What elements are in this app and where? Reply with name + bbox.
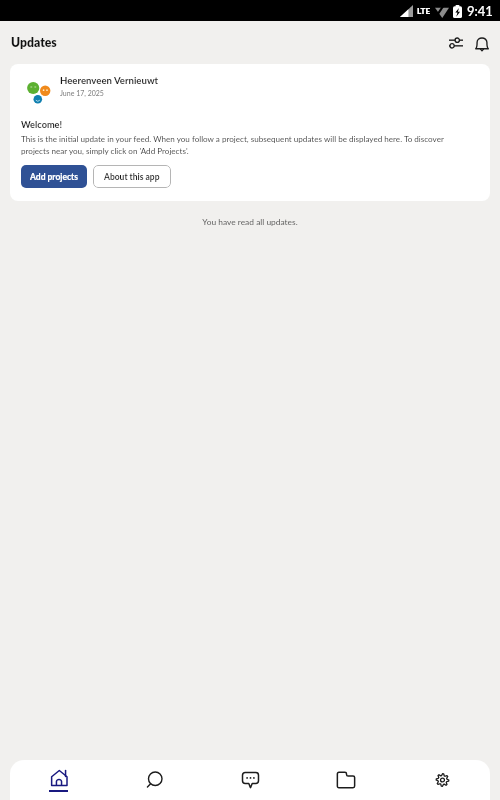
staticText: You have read all updates. — [0, 217, 500, 227]
button[interactable]: Home — [10, 760, 106, 800]
staticText: LTE — [417, 6, 431, 16]
button[interactable]: Heerenveen Vernieuwt — [10, 64, 490, 201]
button[interactable]: Filter — [444, 31, 468, 55]
staticText: About this app — [104, 172, 160, 182]
staticText: Add projects — [30, 172, 78, 182]
staticText: Updates — [11, 35, 57, 50]
button[interactable]: Add projects — [21, 165, 87, 188]
button[interactable]: Notifications — [470, 31, 494, 55]
staticText: June 17, 2025 — [60, 89, 104, 97]
staticText: This is the initial update in your feed.… — [21, 134, 473, 155]
staticText: Heerenveen Vernieuwt — [60, 75, 159, 87]
button[interactable]: About this app — [93, 165, 171, 188]
button[interactable]: Search — [106, 760, 202, 800]
staticText: Welcome! — [21, 119, 63, 130]
staticText: 9:41 — [467, 3, 493, 19]
button[interactable]: Messages — [202, 760, 298, 800]
button[interactable]: Projects — [298, 760, 394, 800]
button[interactable]: Settings — [394, 760, 490, 800]
